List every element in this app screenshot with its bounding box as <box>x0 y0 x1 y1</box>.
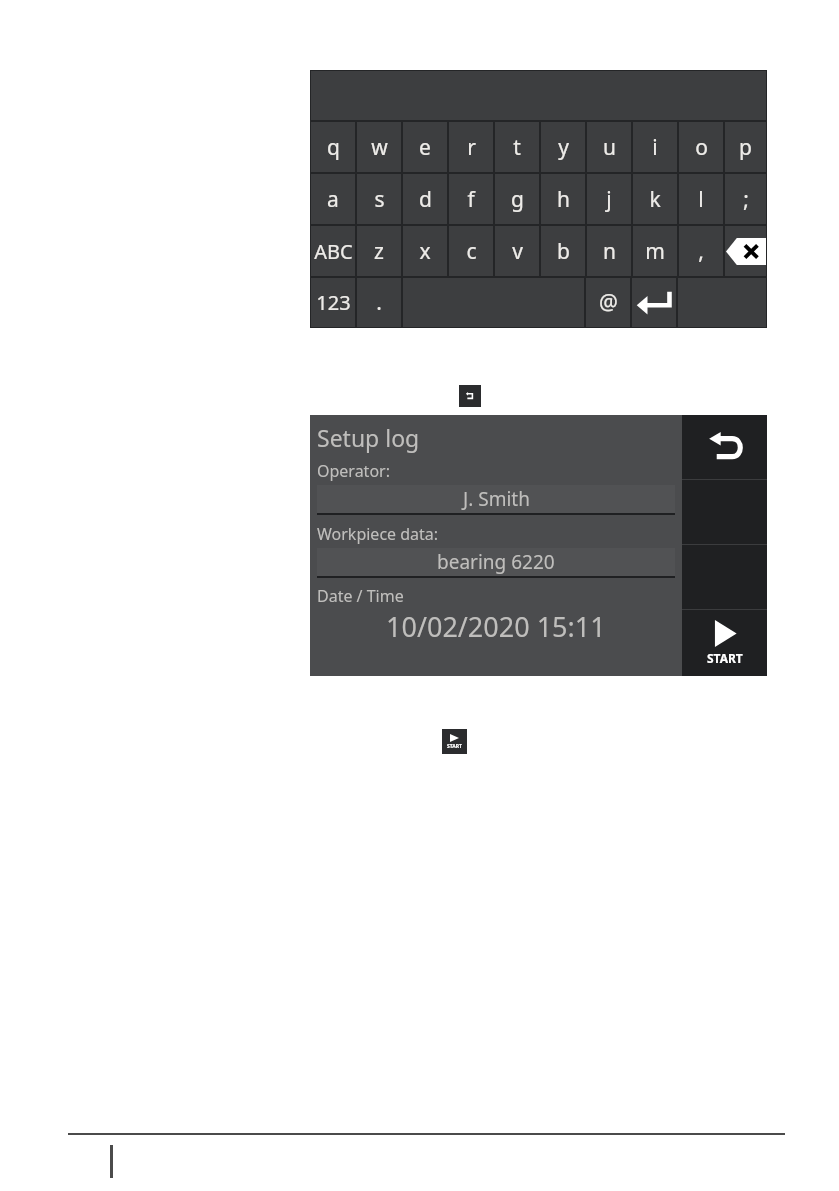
button[interactable]: v <box>495 226 539 276</box>
staticText: o <box>695 133 708 162</box>
staticText: . <box>376 288 382 317</box>
button[interactable]: t <box>495 122 539 172</box>
staticText: Workpiece data: <box>317 523 439 545</box>
staticText: J. Smith <box>463 486 530 512</box>
button[interactable]: Start <box>442 729 467 754</box>
button[interactable] <box>632 278 676 327</box>
button[interactable]: J. Smith <box>317 485 675 513</box>
button[interactable]: c <box>449 226 493 276</box>
button[interactable]: z <box>357 226 401 276</box>
staticText: ABC <box>314 238 353 265</box>
staticText: a <box>327 185 339 214</box>
button[interactable]: @ <box>586 278 630 327</box>
button[interactable]: r <box>449 122 493 172</box>
staticText: j <box>606 185 612 214</box>
button[interactable]: p <box>725 122 766 172</box>
button[interactable]: ; <box>725 174 766 224</box>
staticText: r <box>467 133 476 162</box>
button[interactable]: m <box>633 226 677 276</box>
button[interactable]: l <box>679 174 723 224</box>
staticText: w <box>371 133 388 162</box>
staticText: u <box>603 133 616 162</box>
staticText: k <box>649 185 661 214</box>
staticText: s <box>374 185 385 214</box>
button[interactable]: a <box>311 174 355 224</box>
staticText: bearing 6220 <box>437 549 555 575</box>
staticText: v <box>512 237 523 266</box>
staticText: e <box>419 133 431 162</box>
staticText: d <box>419 185 432 214</box>
staticText: Date / Time <box>317 585 404 607</box>
button[interactable]: g <box>495 174 539 224</box>
button[interactable]: 123 <box>311 278 355 327</box>
staticText: @ <box>599 288 618 317</box>
button[interactable]: e <box>403 122 447 172</box>
button[interactable]: START <box>682 610 767 675</box>
button[interactable]: u <box>587 122 631 172</box>
button[interactable]: i <box>633 122 677 172</box>
button[interactable]: f <box>449 174 493 224</box>
button[interactable]: n <box>587 226 631 276</box>
staticText: c <box>466 237 477 266</box>
button[interactable]: w <box>357 122 401 172</box>
staticText: t <box>513 133 521 162</box>
staticText: h <box>557 185 570 214</box>
button[interactable]: x <box>403 226 447 276</box>
button[interactable]: o <box>679 122 723 172</box>
staticText: Operator: <box>317 460 390 482</box>
staticText: g <box>511 185 524 214</box>
button[interactable]: ABC <box>311 226 355 276</box>
staticText: z <box>374 237 384 266</box>
button[interactable]: k <box>633 174 677 224</box>
staticText: n <box>603 237 616 266</box>
staticText: p <box>739 133 752 162</box>
button[interactable]: q <box>311 122 355 172</box>
staticText: START <box>707 650 743 666</box>
button[interactable]: bearing 6220 <box>317 548 675 576</box>
button[interactable]: . <box>357 278 401 327</box>
button[interactable]: s <box>357 174 401 224</box>
staticText: i <box>652 133 658 162</box>
button[interactable]: , <box>679 226 723 276</box>
staticText: 123 <box>316 289 351 316</box>
staticText: ; <box>743 185 749 214</box>
button[interactable]: b <box>541 226 585 276</box>
staticText: x <box>419 237 431 266</box>
button[interactable]: j <box>587 174 631 224</box>
staticText: q <box>327 133 340 162</box>
staticText: , <box>698 237 704 266</box>
button[interactable]: d <box>403 174 447 224</box>
staticText: f <box>467 185 475 214</box>
button[interactable]: Back <box>682 415 767 479</box>
button[interactable]: h <box>541 174 585 224</box>
staticText: START <box>447 743 462 750</box>
button[interactable] <box>725 226 766 276</box>
staticText: b <box>557 237 570 266</box>
staticText: m <box>645 237 665 266</box>
staticText: l <box>698 185 704 214</box>
button[interactable]: y <box>541 122 585 172</box>
button[interactable]: Back <box>459 385 481 407</box>
staticText: 10/02/2020 15:11 <box>386 608 606 645</box>
staticText: Setup log <box>317 422 420 453</box>
staticText: y <box>558 133 569 162</box>
